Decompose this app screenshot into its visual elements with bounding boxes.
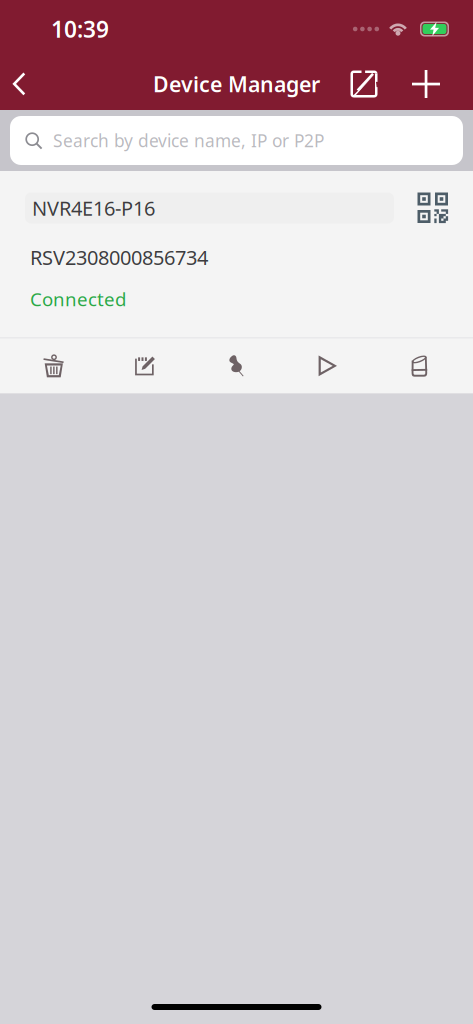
button[interactable]: Back <box>0 58 37 110</box>
button[interactable]: Scan QR code <box>408 188 458 228</box>
button[interactable]: Pin <box>191 338 282 393</box>
button[interactable]: Search by device name, IP or P2P <box>10 116 463 165</box>
staticText: Device Manager <box>153 70 320 98</box>
staticText: Search by device name, IP or P2P <box>53 129 324 152</box>
button[interactable]: Edit <box>99 338 191 393</box>
staticText: RSV2308000856734 <box>30 244 208 271</box>
staticText: Connected <box>30 287 126 311</box>
button[interactable]: Play <box>282 338 374 393</box>
button[interactable]: Add device <box>402 58 450 110</box>
button[interactable]: Share <box>340 58 388 110</box>
staticText: NVR4E16-P16 <box>32 195 155 221</box>
staticText: 10:39 <box>51 14 109 44</box>
button[interactable]: Storage <box>374 338 465 393</box>
button[interactable]: Delete <box>8 338 99 393</box>
